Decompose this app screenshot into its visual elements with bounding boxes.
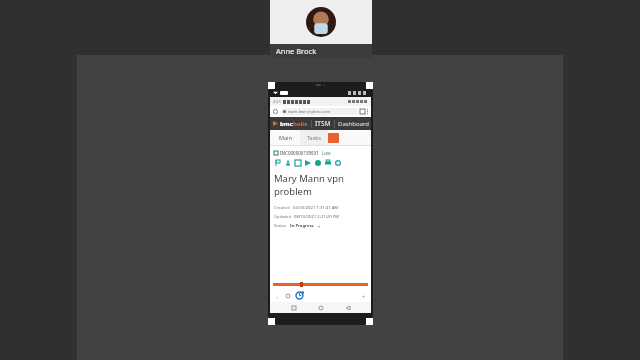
staticText: dwm-hwn.trybmc.com — [288, 109, 331, 114]
button[interactable]: Tabs — [360, 109, 365, 114]
button[interactable]: Assign — [284, 159, 291, 166]
staticText: + — [362, 293, 366, 299]
button[interactable]: More options — [367, 109, 368, 114]
staticText: Mary Mann vpn problem — [274, 172, 367, 198]
staticText: 2:21 — [273, 99, 281, 104]
button[interactable]: Add — [328, 133, 339, 143]
button[interactable]: Flag — [274, 159, 281, 166]
staticText: helix — [293, 120, 308, 128]
staticText: Status — [274, 223, 287, 229]
button[interactable]: Email — [294, 159, 301, 166]
staticText: 08/10/2021 2:21:20 PM — [294, 214, 340, 220]
staticText: Updated — [274, 214, 292, 220]
button[interactable]: Reset — [285, 293, 291, 299]
button[interactable]: Back — [344, 304, 351, 311]
button[interactable]: Favorite — [314, 159, 321, 166]
button[interactable]: Tasks — [300, 130, 328, 145]
staticText: Anne Brock — [276, 46, 317, 56]
staticText: INC000000139931 — [280, 150, 319, 156]
button[interactable]: Recents — [290, 304, 297, 311]
staticText: Tasks — [307, 134, 321, 141]
other: Bookmark — [273, 109, 278, 114]
staticText: 03/30/2021 7:31:41 AM — [293, 205, 339, 211]
button[interactable]: Zoom out — [274, 293, 280, 299]
button[interactable]: Refresh — [334, 159, 341, 166]
button[interactable]: Send — [304, 159, 311, 166]
button[interactable]: Print — [324, 159, 331, 166]
button[interactable] — [273, 283, 368, 286]
button[interactable]: Main — [270, 130, 300, 145]
button[interactable]: History — [295, 291, 304, 300]
staticText: bmc — [280, 120, 293, 128]
button[interactable]: dwm-hwn.trybmc.com — [281, 108, 358, 115]
staticText: In Progress — [290, 223, 314, 229]
staticText: ITSM — [315, 119, 331, 128]
staticText: Low — [322, 150, 331, 156]
button[interactable]: Zoom in — [361, 293, 367, 299]
staticText: Main — [279, 134, 292, 141]
staticText: → — [317, 224, 321, 229]
staticText: - — [276, 293, 278, 299]
staticText: Dashboard — [338, 120, 370, 128]
button[interactable]: Home — [317, 304, 324, 311]
staticText: Created — [274, 205, 290, 211]
